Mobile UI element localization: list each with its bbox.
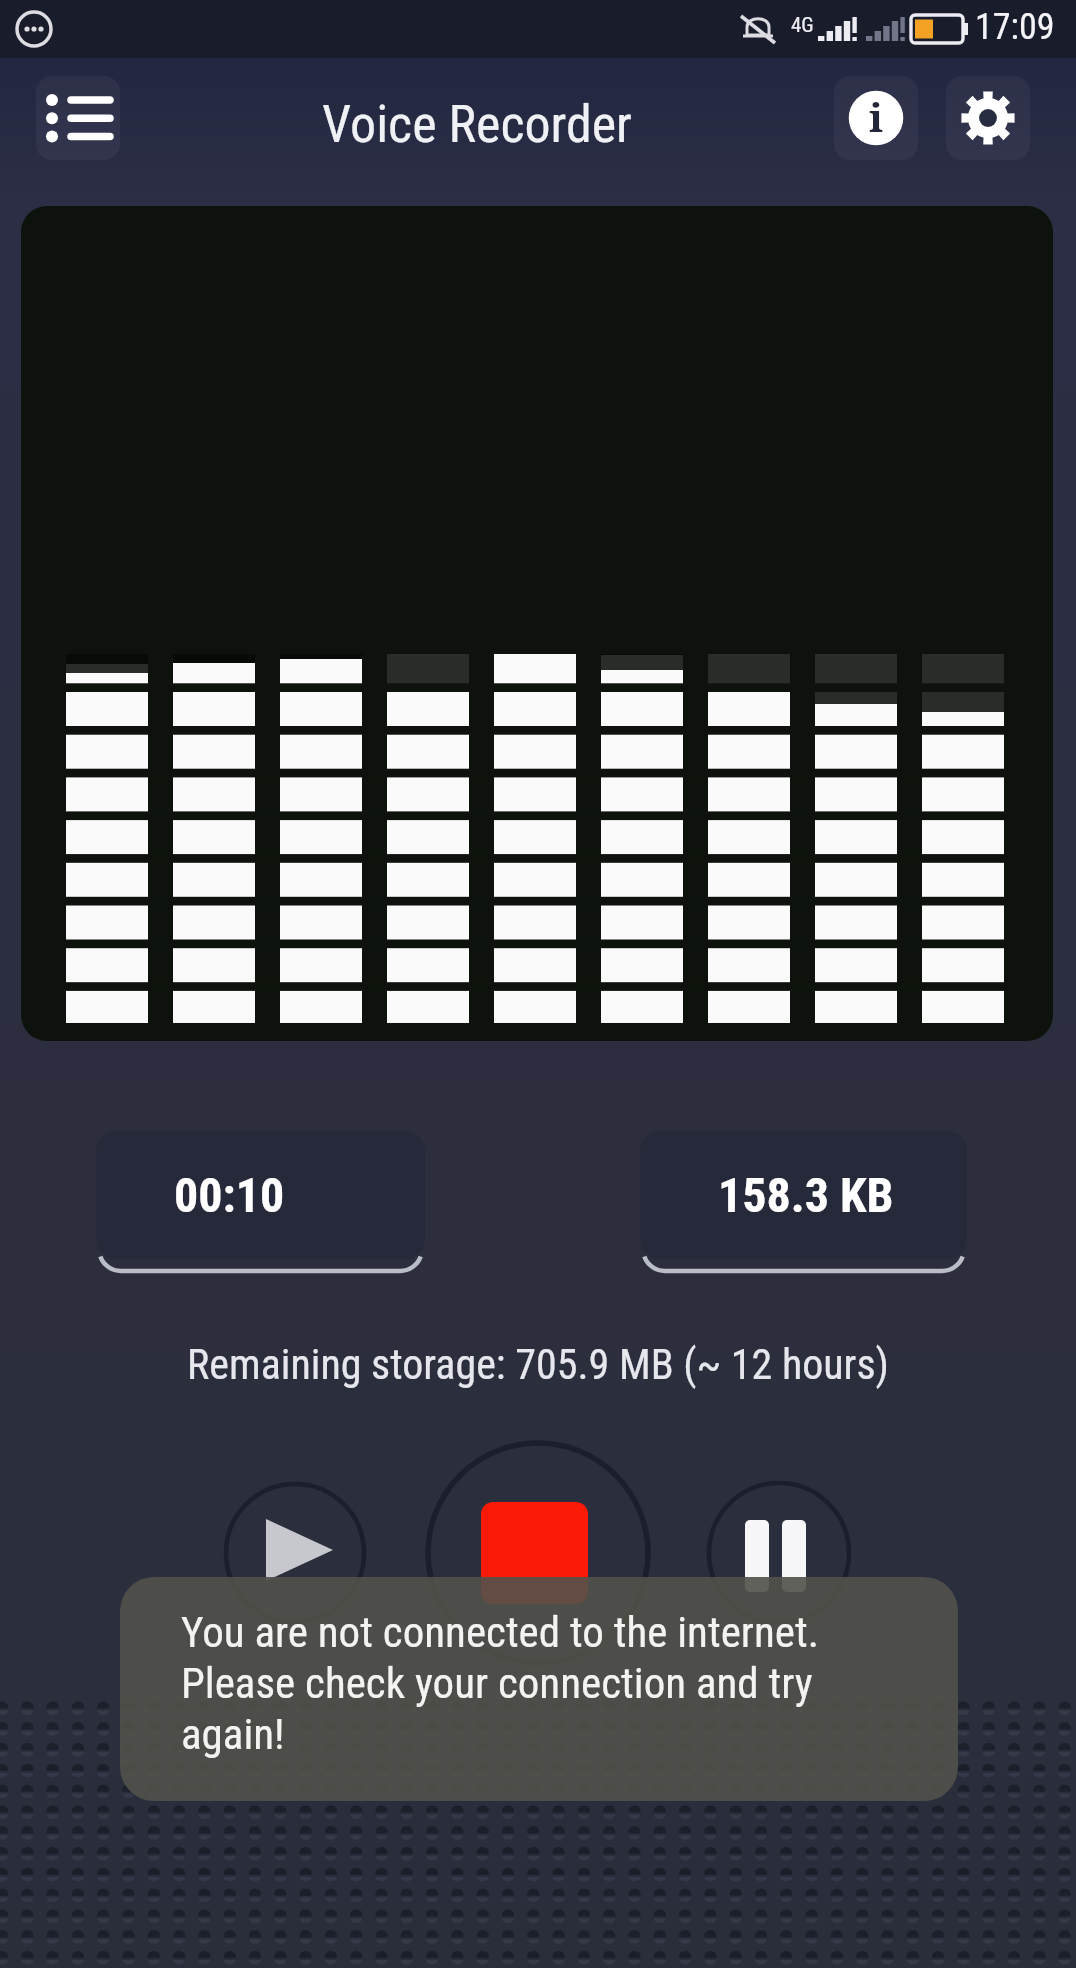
button[interactable]: 00:10 — [96, 1131, 425, 1259]
other: Transport controls — [180, 1420, 900, 1700]
staticText: 17:09 — [975, 6, 1055, 48]
staticText: Voice Recorder — [120, 94, 834, 155]
button[interactable]: Info — [834, 76, 918, 160]
staticText: 00:10 — [174, 1167, 285, 1223]
button[interactable]: 158.3 KB — [640, 1131, 967, 1259]
staticText: 4G — [791, 13, 814, 38]
button[interactable]: Recordings list — [36, 76, 120, 160]
button[interactable]: Settings — [946, 76, 1030, 160]
staticText: Remaining storage: 705.9 MB (~ 12 hours) — [0, 1340, 1076, 1389]
staticText: 158.3 KB — [718, 1167, 894, 1223]
staticText: i — [869, 89, 884, 143]
staticText: You are not connected to the internet. P… — [181, 1607, 881, 1760]
